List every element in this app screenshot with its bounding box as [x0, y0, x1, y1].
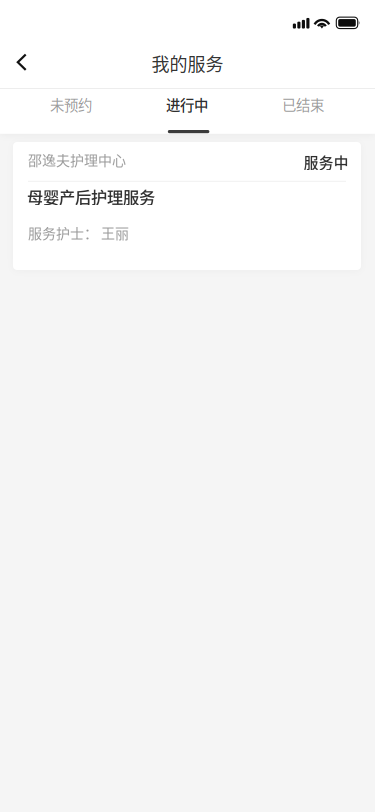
button[interactable]: 邵逸夫护理中心	[13, 142, 361, 270]
staticText: 未预约	[50, 94, 92, 115]
button[interactable]: 已结束	[245, 89, 361, 134]
button[interactable]: Back	[0, 40, 46, 84]
staticText: 母婴产后护理服务	[27, 185, 155, 208]
staticText: 服务中	[304, 151, 349, 172]
staticText: 我的服务	[151, 50, 223, 76]
staticText: 服务护士： 王丽	[28, 222, 129, 243]
staticText: 进行中	[166, 94, 208, 115]
button[interactable]: 未预约	[13, 89, 129, 134]
button[interactable]: 进行中	[129, 89, 245, 134]
staticText: 邵逸夫护理中心	[28, 149, 126, 170]
staticText: 已结束	[282, 94, 324, 115]
